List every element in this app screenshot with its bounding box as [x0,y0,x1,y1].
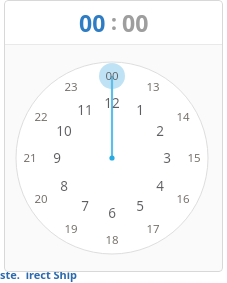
staticText: : [111,8,117,37]
staticText: 5 [136,197,144,215]
staticText: 9 [53,149,61,167]
staticText: 1 [136,101,144,119]
staticText: 23 [64,79,78,95]
button[interactable]: 00 [120,7,151,38]
staticText: 8 [60,177,68,195]
button[interactable]: 10 [52,122,76,140]
staticText: 7 [81,197,89,215]
staticText: 16 [176,191,190,207]
staticText: 4 [156,177,164,195]
staticText: 00 [105,68,119,84]
button[interactable]: 14 [171,108,195,126]
staticText: 00 [79,7,106,38]
staticText: 18 [105,232,119,248]
staticText: 20 [34,191,48,207]
button[interactable]: 22 [29,108,53,126]
button[interactable]: 1 [128,101,152,119]
button[interactable]: 00 [100,67,124,85]
staticText: 10 [56,122,72,140]
button[interactable]: 5 [128,197,152,215]
staticText: 19 [64,221,78,237]
button[interactable]: 4 [148,177,172,195]
staticText: 13 [146,79,160,95]
button[interactable]: 9 [45,149,69,167]
staticText: 14 [176,109,190,125]
staticText: 21 [23,150,37,166]
staticText: 11 [77,101,93,119]
staticText: 2 [156,122,164,140]
button[interactable]: 2 [148,122,172,140]
button[interactable]: 23 [59,78,83,96]
staticText: 6 [108,204,116,222]
staticText: 22 [34,109,48,125]
button[interactable]: 11 [73,101,97,119]
button[interactable]: 21 [18,149,42,167]
button[interactable]: Clock face hour picker [4,45,223,272]
button[interactable]: 3 [155,149,179,167]
button[interactable]: 20 [29,190,53,208]
button[interactable]: 7 [73,197,97,215]
staticText: 12 [104,94,120,112]
button[interactable]: 15 [182,149,206,167]
button[interactable]: 13 [141,78,165,96]
button[interactable]: 12 [100,94,124,112]
button[interactable]: 18 [100,231,124,249]
button[interactable]: 16 [171,190,195,208]
button[interactable]: 00 [77,7,108,38]
button[interactable]: 6 [100,204,124,222]
staticText: ste. irect Ship [0,267,77,282]
staticText: 15 [187,150,201,166]
button[interactable]: 8 [52,177,76,195]
button[interactable]: 19 [59,220,83,238]
staticText: 3 [163,149,171,167]
button[interactable]: 17 [141,220,165,238]
staticText: 00 [122,7,149,38]
staticText: 17 [146,221,160,237]
